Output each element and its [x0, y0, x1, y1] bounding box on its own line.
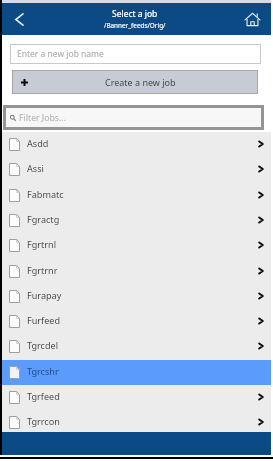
staticText: Fgrtrnr [27, 264, 58, 276]
staticText: Tgrrcon [27, 415, 60, 427]
button[interactable]: Fabmatc [2, 183, 271, 208]
staticText: Furapay [27, 289, 62, 301]
staticText: Tgrcshr [27, 365, 59, 377]
button[interactable]: Fgrtrnl [2, 233, 271, 258]
button[interactable]: Assi [2, 157, 271, 182]
staticText: Create a new job [105, 76, 176, 88]
staticText: Assi [27, 162, 44, 174]
button[interactable]: Home [233, 3, 271, 35]
staticText: Fgractg [27, 213, 60, 225]
button[interactable]: Back [2, 3, 36, 35]
staticText: Fabmatc [27, 188, 64, 200]
button[interactable]: Tgrrcon [2, 410, 271, 432]
button[interactable]: Fgractg [2, 208, 271, 233]
staticText: Fgrtrnl [27, 238, 57, 250]
staticText: Furfeed [27, 314, 61, 326]
button[interactable]: Asdd [2, 132, 271, 157]
button[interactable]: Enter a new job name [10, 44, 261, 64]
button[interactable]: Fgrtrnr [2, 259, 271, 284]
button[interactable]: Tgrcdel [2, 334, 271, 359]
staticText: Tgrcdel [27, 339, 59, 351]
button[interactable]: Tgrcshr [2, 360, 271, 385]
staticText: Select a job [112, 8, 158, 20]
staticText: Asdd [27, 137, 49, 149]
button[interactable]: Furfeed [2, 309, 271, 334]
staticText: Tgrfeed [27, 390, 60, 402]
button[interactable]: Tgrfeed [2, 385, 271, 410]
button[interactable]: Filter Jobs... [6, 108, 261, 127]
staticText: Enter a new job name [17, 48, 104, 60]
button[interactable]: Furapay [2, 284, 271, 309]
staticText: Filter Jobs... [19, 112, 66, 124]
staticText: /Banner_feeds/Orig/ [104, 21, 166, 30]
button[interactable]: Create a new job [12, 70, 258, 94]
